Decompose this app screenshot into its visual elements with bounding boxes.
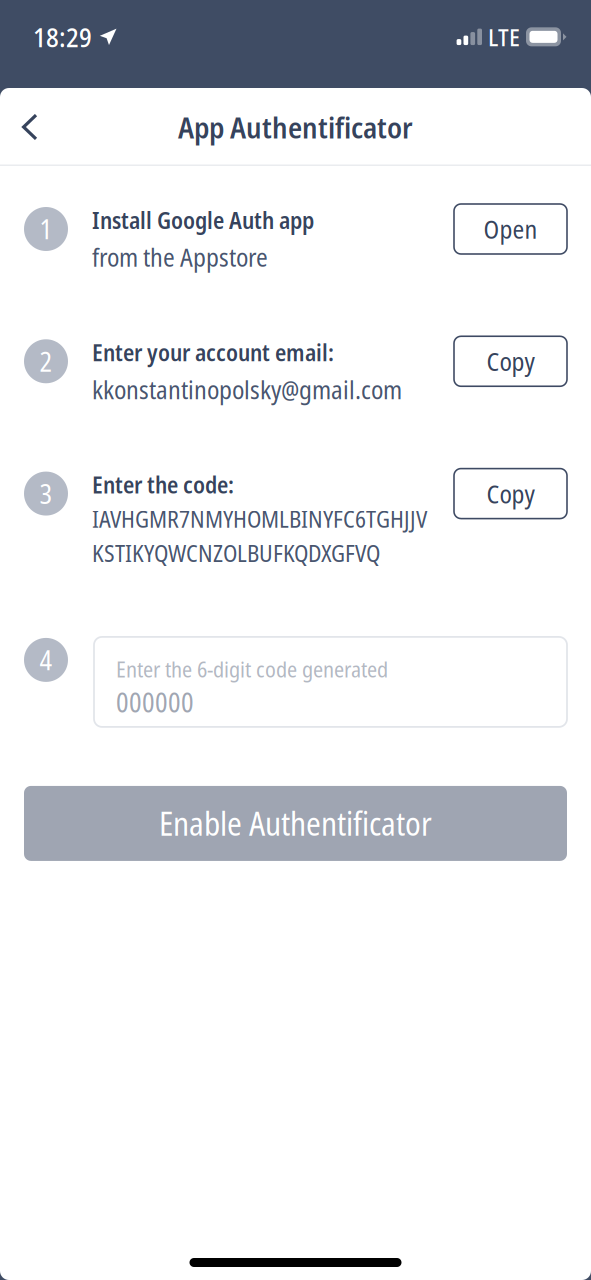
staticText: 1	[39, 211, 52, 247]
staticText: KSTIKYQWCNZOLBUFKQDXGFVQ	[92, 537, 380, 569]
staticText: 18:29	[33, 19, 92, 55]
button[interactable]: Back	[0, 92, 64, 161]
staticText: LTE	[488, 20, 520, 53]
staticText: Enable Authentificator	[159, 802, 432, 845]
staticText: from the Appstore	[92, 240, 268, 274]
staticText: 4	[39, 642, 52, 678]
button[interactable]: Copy	[454, 336, 567, 386]
button[interactable]: Open	[454, 204, 567, 254]
staticText: kkonstantinopolsky@gmail.com	[92, 372, 402, 407]
staticText: 3	[39, 475, 52, 512]
staticText: 2	[39, 343, 52, 379]
staticText: App Authentificator	[178, 107, 413, 147]
button[interactable]: Copy	[454, 469, 567, 519]
staticText: Enter the 6-digit code generated	[116, 654, 388, 684]
staticText: Enter the code:	[92, 469, 234, 500]
button[interactable]: Enable Authentificator	[24, 786, 567, 861]
button[interactable]: Enter the 6-digit code generated	[94, 637, 567, 727]
staticText: Copy	[486, 476, 534, 511]
staticText: Copy	[486, 344, 534, 378]
staticText: Enter your account email:	[92, 336, 334, 368]
staticText: Open	[483, 212, 537, 246]
staticText: 000000	[116, 684, 194, 720]
staticText: IAVHGMR7NMYHOMLBINYFC6TGHJJV	[92, 503, 427, 535]
staticText: Install Google Auth app	[92, 204, 314, 236]
